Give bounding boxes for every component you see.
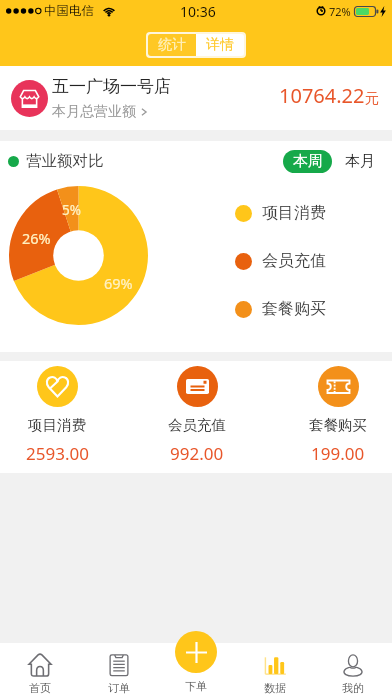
button[interactable]: 本月 bbox=[345, 152, 375, 171]
button[interactable]: 详情 bbox=[196, 34, 244, 56]
staticText: 5% bbox=[62, 201, 81, 219]
staticText: 详情 bbox=[206, 36, 234, 54]
staticText: 数据 bbox=[264, 681, 286, 695]
staticText: 套餐购买 bbox=[262, 299, 326, 319]
staticText: 26% bbox=[22, 228, 51, 248]
button[interactable]: 我的 bbox=[314, 643, 392, 696]
button[interactable]: 数据 bbox=[236, 643, 314, 696]
staticText: 项目消费 bbox=[28, 416, 86, 434]
staticText: 会员充值 bbox=[262, 251, 326, 271]
button[interactable]: 项目消费 bbox=[2, 366, 112, 465]
button[interactable]: 套餐购买 bbox=[283, 366, 392, 465]
staticText: 2593.00 bbox=[26, 442, 89, 465]
button[interactable]: 本周 bbox=[283, 150, 332, 173]
staticText: 元 bbox=[365, 90, 379, 108]
staticText: 项目消费 bbox=[262, 203, 326, 223]
staticText: 10:36 bbox=[180, 2, 216, 21]
staticText: 199.00 bbox=[311, 442, 365, 465]
staticText: 下单 bbox=[185, 679, 207, 693]
staticText: 本月总营业额 bbox=[52, 103, 136, 121]
button[interactable]: 五一广场一号店 bbox=[11, 66, 379, 130]
button[interactable]: 下单 bbox=[175, 631, 217, 673]
staticText: 我的 bbox=[342, 681, 364, 695]
staticText: 72% bbox=[329, 4, 351, 19]
staticText: 首页 bbox=[29, 681, 51, 695]
button[interactable]: 会员充值 bbox=[142, 366, 252, 465]
staticText: 本月 bbox=[345, 152, 375, 171]
staticText: 订单 bbox=[108, 681, 130, 695]
staticText: 69% bbox=[104, 273, 133, 293]
button[interactable]: 会员充值 bbox=[235, 251, 326, 271]
button[interactable]: 统计 bbox=[148, 34, 196, 56]
staticText: 中国电信 bbox=[44, 3, 94, 19]
button[interactable]: 套餐购买 bbox=[235, 299, 326, 319]
button[interactable]: 首页 bbox=[0, 643, 79, 696]
staticText: 会员充值 bbox=[168, 416, 226, 434]
staticText: 10764.22 bbox=[279, 82, 365, 109]
button[interactable]: 订单 bbox=[79, 643, 158, 696]
staticText: 992.00 bbox=[170, 442, 224, 465]
staticText: 营业额对比 bbox=[26, 151, 104, 171]
staticText: 本周 bbox=[293, 152, 323, 171]
button[interactable]: 项目消费 bbox=[235, 203, 326, 223]
staticText: 统计 bbox=[158, 36, 186, 54]
staticText: 套餐购买 bbox=[309, 416, 367, 434]
staticText: 五一广场一号店 bbox=[52, 76, 171, 97]
